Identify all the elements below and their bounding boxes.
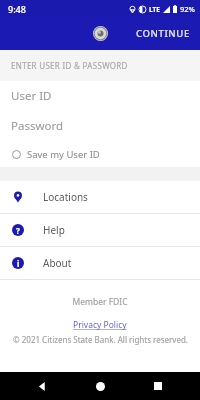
button[interactable]: Password	[0, 111, 200, 141]
button[interactable]: i	[0, 247, 200, 279]
staticText: Member FDIC	[72, 296, 128, 308]
staticText: Save my User ID	[27, 148, 100, 161]
button[interactable]: Privacy Policy	[73, 319, 127, 331]
button[interactable]: ?	[0, 214, 200, 246]
staticText: i	[17, 258, 20, 269]
staticText: ?	[16, 225, 20, 236]
staticText: © 2021 Citizens State Bank. All rights r…	[13, 334, 188, 345]
staticText: CONTINUE	[136, 27, 190, 40]
staticText: About	[43, 256, 72, 270]
staticText: User ID	[11, 88, 52, 104]
button[interactable]: User ID	[0, 81, 200, 111]
button[interactable]: Save my User ID	[0, 141, 200, 167]
staticText: Locations	[43, 190, 88, 204]
staticText: 92%	[180, 4, 195, 14]
staticText: LTE	[149, 5, 160, 14]
staticText: Password	[11, 118, 64, 134]
staticText: 9:48	[8, 3, 26, 15]
staticText: Privacy Policy	[73, 319, 127, 331]
button[interactable]: CONTINUE	[126, 20, 200, 47]
button[interactable]: Locations	[0, 181, 200, 213]
button[interactable]: Back	[26, 372, 58, 400]
button[interactable]: Recents	[142, 372, 174, 400]
button[interactable]: Bank logo	[93, 26, 108, 41]
staticText: ENTER USER ID & PASSWORD	[11, 60, 128, 71]
button[interactable]: Home	[84, 372, 116, 400]
staticText: Help	[43, 223, 65, 237]
